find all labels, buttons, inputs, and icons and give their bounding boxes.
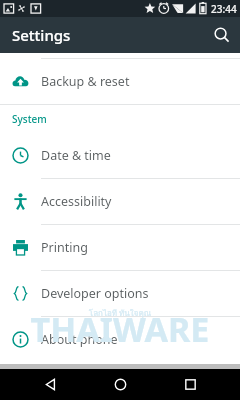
- staticText: Backup & reset: [41, 73, 130, 90]
- button[interactable]: About phone: [0, 317, 240, 362]
- button[interactable]: Back: [30, 369, 70, 400]
- staticText: 23:44: [211, 2, 237, 16]
- button[interactable]: Date & time: [0, 133, 240, 178]
- staticText: Printing: [41, 239, 88, 256]
- button[interactable]: Home: [100, 369, 140, 400]
- button[interactable]: Developer options: [0, 271, 240, 316]
- staticText: About phone: [41, 331, 118, 348]
- staticText: Developer options: [41, 285, 149, 302]
- staticText: Settings: [12, 25, 71, 45]
- staticText: System: [12, 112, 47, 126]
- button[interactable]: Accessibility: [0, 179, 240, 224]
- staticText: โลกไอที ทันใจคุณ: [0, 307, 240, 320]
- button[interactable]: Backup & reset: [0, 59, 240, 104]
- button[interactable]: Printing: [0, 225, 240, 270]
- staticText: Date & time: [41, 147, 111, 164]
- staticText: THAIWARE: [0, 306, 240, 352]
- button[interactable]: Search: [204, 17, 240, 53]
- button[interactable]: Recent apps: [170, 369, 210, 400]
- staticText: Accessibility: [41, 193, 112, 210]
